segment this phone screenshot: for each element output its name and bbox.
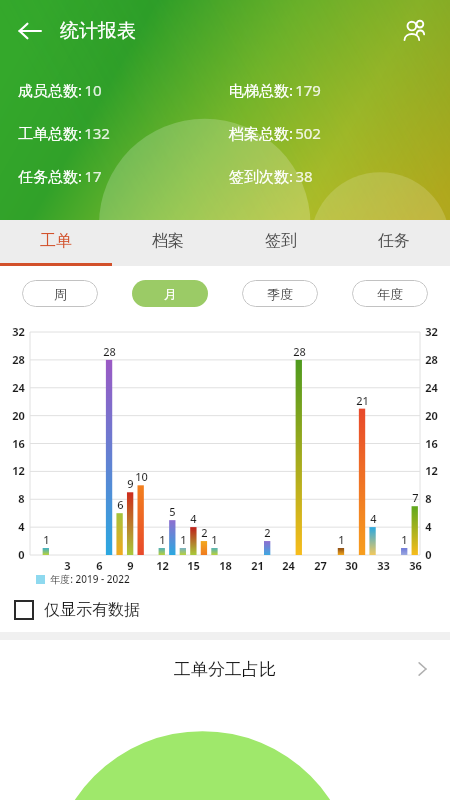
staticText: 33 [377,558,390,573]
button[interactable]: Members [392,8,438,54]
staticText: 32 [12,324,25,339]
staticText: 20 [12,408,25,423]
button[interactable]: 任务 [337,220,450,266]
button[interactable]: 工单 [0,220,112,266]
staticText: 28 [12,352,25,367]
staticText: 任务 [378,231,410,251]
staticText: 10 [84,80,102,100]
staticText: 21 [251,558,264,573]
staticText: 28 [293,344,306,359]
staticText: 周 [54,286,67,302]
button[interactable]: Back [6,7,54,55]
staticText: 1 [43,532,50,547]
staticText: 6 [96,558,103,573]
staticText: 502 [295,123,321,143]
staticText: 4 [370,511,377,526]
staticText: 20 [425,408,438,423]
button[interactable]: 签到 [224,220,337,266]
staticText: 18 [219,558,232,573]
staticText: 12 [156,558,169,573]
staticText: 2 [201,525,208,540]
staticText: 28 [103,344,116,359]
button[interactable]: 年度 [352,280,428,307]
staticText: 签到 [265,231,297,251]
staticText: 10 [135,469,148,484]
staticText: 179 [295,80,321,100]
button[interactable]: 档案 [112,220,224,266]
staticText: 8 [425,491,432,506]
staticText: 4 [190,511,197,526]
staticText: 7 [412,490,419,505]
staticText: 1 [338,532,345,547]
staticText: 月 [164,286,177,302]
staticText: 2 [264,525,271,540]
staticText: 签到次数: [227,166,295,186]
staticText: 8 [18,491,25,506]
button[interactable]: 工单分工占比 [0,640,450,698]
staticText: 档案 [152,231,184,251]
staticText: 12 [12,463,25,478]
staticText: 1 [401,532,408,547]
staticText: 成员总数: [16,80,84,100]
staticText: 年度: 2019 - 2022 [50,572,130,586]
staticText: 仅显示有数据 [44,600,140,620]
staticText: 17 [84,166,102,186]
staticText: 档案总数: [227,123,295,143]
staticText: 1 [180,532,187,547]
staticText: 24 [12,380,25,395]
staticText: 24 [425,380,438,395]
staticText: 6 [117,497,124,512]
staticText: 21 [356,393,369,408]
staticText: 24 [282,558,295,573]
staticText: 27 [314,558,327,573]
button[interactable]: 月 [132,280,208,307]
staticText: 1 [211,532,218,547]
staticText: 16 [425,436,438,451]
staticText: 0 [18,547,25,562]
staticText: 季度 [267,286,293,302]
staticText: 电梯总数: [227,80,295,100]
staticText: 工单总数: [16,123,84,143]
staticText: 工单 [40,231,72,251]
staticText: 5 [169,504,176,519]
staticText: 任务总数: [16,166,84,186]
staticText: 9 [127,476,134,491]
staticText: 15 [187,558,200,573]
staticText: 16 [12,436,25,451]
staticText: 1 [159,532,166,547]
staticText: 9 [127,558,134,573]
staticText: 统计报表 [60,19,136,43]
staticText: 12 [425,463,438,478]
button[interactable]: 季度 [242,280,318,307]
staticText: 28 [425,352,438,367]
staticText: 0 [425,547,432,562]
button[interactable]: 仅显示有数据 [0,588,450,632]
staticText: 36 [409,558,422,573]
staticText: 38 [295,166,313,186]
button[interactable]: 周 [22,280,98,307]
staticText: 4 [18,519,25,534]
staticText: 4 [425,519,432,534]
staticText: 工单分工占比 [174,659,276,680]
staticText: 32 [425,324,438,339]
staticText: 30 [345,558,358,573]
staticText: 3 [64,558,71,573]
other: Open detail [410,657,434,681]
staticText: 132 [84,123,110,143]
staticText: 年度 [377,286,403,302]
